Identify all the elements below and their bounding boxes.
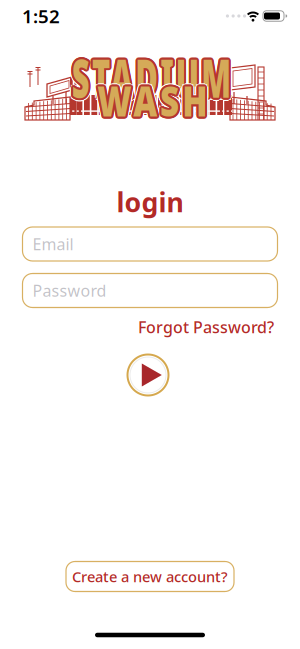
staticText: STADIUM [17, 42, 293, 113]
staticText: STADIUM [19, 42, 295, 112]
staticText: WASH [82, 70, 225, 126]
staticText: WASH [81, 74, 224, 130]
staticText: STADIUM [16, 43, 292, 114]
staticText: STADIUM [13, 40, 289, 110]
staticText: login [116, 184, 183, 220]
staticText: STADIUM [10, 42, 286, 112]
button[interactable]: Forgot Password? [138, 316, 274, 338]
staticText: STADIUM [11, 40, 287, 111]
staticText: Password [32, 280, 106, 301]
staticText: STADIUM [13, 42, 289, 112]
staticText: STADIUM [17, 42, 293, 112]
staticText: WASH [84, 71, 226, 128]
staticText: WASH [79, 70, 222, 127]
staticText: WASH [86, 72, 228, 128]
staticText: WASH [79, 72, 221, 128]
staticText: STADIUM [15, 43, 291, 114]
staticText: WASH [84, 72, 226, 128]
staticText: WASH [80, 73, 223, 130]
staticText: Email [32, 233, 73, 255]
staticText: WASH [81, 70, 224, 126]
staticText: WASH [83, 70, 226, 127]
staticText: WASH [83, 73, 226, 130]
staticText: STADIUM [17, 39, 293, 110]
staticText: WASH [81, 75, 224, 132]
staticText: STADIUM [8, 42, 284, 112]
button[interactable]: Email [22, 227, 277, 261]
staticText: WASH [80, 70, 223, 126]
staticText: STADIUM [13, 38, 289, 109]
staticText: WASH [77, 72, 219, 128]
staticText: STADIUM [16, 40, 292, 111]
staticText: STADIUM [15, 40, 291, 110]
staticText: STADIUM [10, 39, 286, 110]
staticText: WASH [82, 73, 225, 130]
staticText: WASH [84, 74, 227, 131]
staticText: Create a new account? [72, 567, 228, 586]
staticText: STADIUM [13, 44, 289, 114]
staticText: WASH [79, 71, 221, 128]
staticText: WASH [79, 72, 221, 129]
staticText: STADIUM [10, 44, 286, 115]
staticText: STADIUM [11, 43, 287, 114]
staticText: WASH [84, 69, 227, 126]
staticText: Forgot Password? [138, 316, 274, 338]
staticText: WASH [78, 74, 221, 131]
button[interactable]: Log in [125, 352, 170, 397]
staticText: WASH [81, 68, 224, 125]
staticText: STADIUM [10, 41, 286, 112]
staticText: WASH [84, 72, 226, 129]
staticText: STADIUM [17, 44, 293, 115]
staticText: WASH [79, 73, 222, 130]
staticText: STADIUM [13, 45, 289, 116]
button[interactable]: Password [22, 273, 277, 307]
staticText: 1:52 [22, 4, 60, 28]
staticText: STADIUM [12, 40, 288, 110]
staticText: STADIUM [10, 42, 286, 113]
staticText: WASH [78, 69, 221, 126]
staticText: WASH [81, 72, 224, 128]
staticText: STADIUM [12, 43, 288, 114]
staticText: STADIUM [17, 41, 293, 112]
button[interactable]: Create a new account? [66, 561, 234, 591]
